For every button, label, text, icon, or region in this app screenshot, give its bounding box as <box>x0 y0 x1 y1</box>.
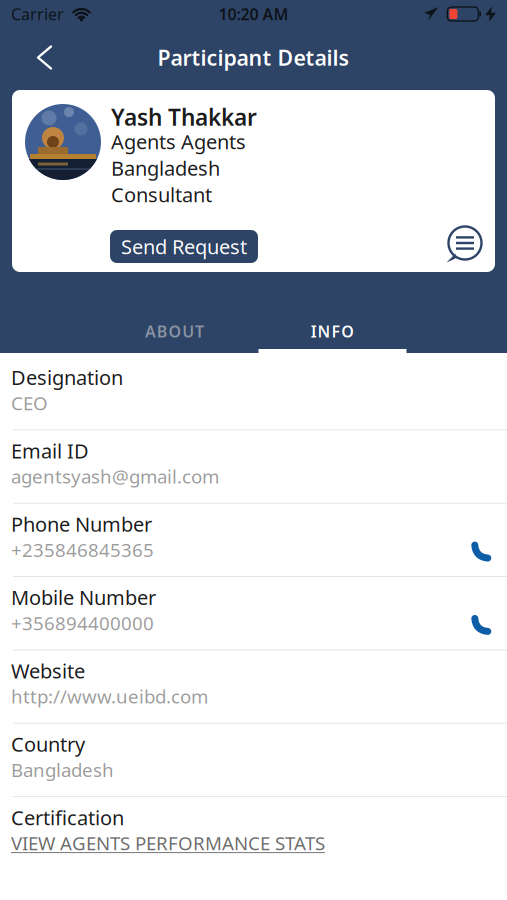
staticText: Website <box>11 657 85 684</box>
staticText: Participant Details <box>157 43 349 72</box>
staticText: agentsyash@gmail.com <box>11 464 219 489</box>
button[interactable]: Call <box>470 538 507 562</box>
staticText: Agents Agents <box>111 128 246 155</box>
staticText: Country <box>11 731 85 757</box>
staticText: http://www.ueibd.com <box>11 684 208 709</box>
button[interactable]: ABOUT <box>100 321 248 353</box>
button[interactable]: Send Request <box>110 230 258 263</box>
staticText: INFO <box>311 321 354 342</box>
button[interactable]: Call <box>470 612 507 636</box>
button[interactable]: Back <box>0 28 71 87</box>
staticText: +356894400000 <box>11 611 154 635</box>
staticText: Bangladesh <box>11 757 114 782</box>
staticText: CEO <box>11 391 48 415</box>
staticText: Phone Number <box>11 511 152 537</box>
staticText: Mobile Number <box>11 584 156 611</box>
staticText: ABOUT <box>145 321 204 342</box>
button[interactable]: VIEW AGENTS PERFORMANCE STATS <box>11 831 325 855</box>
staticText: 10:20 AM <box>218 3 288 25</box>
staticText: Bangladesh <box>111 155 220 181</box>
staticText: Certification <box>11 804 124 831</box>
staticText: +235846845365 <box>11 537 154 562</box>
staticText: Carrier <box>11 3 64 25</box>
staticText: Designation <box>11 364 123 391</box>
button[interactable]: Message <box>445 223 485 263</box>
button[interactable]: INFO <box>258 321 406 353</box>
staticText: Email ID <box>11 437 89 464</box>
staticText: VIEW AGENTS PERFORMANCE STATS <box>11 831 325 855</box>
staticText: Yash Thakkar <box>111 102 257 132</box>
staticText: Send Request <box>121 233 247 260</box>
staticText: Consultant <box>111 181 212 208</box>
